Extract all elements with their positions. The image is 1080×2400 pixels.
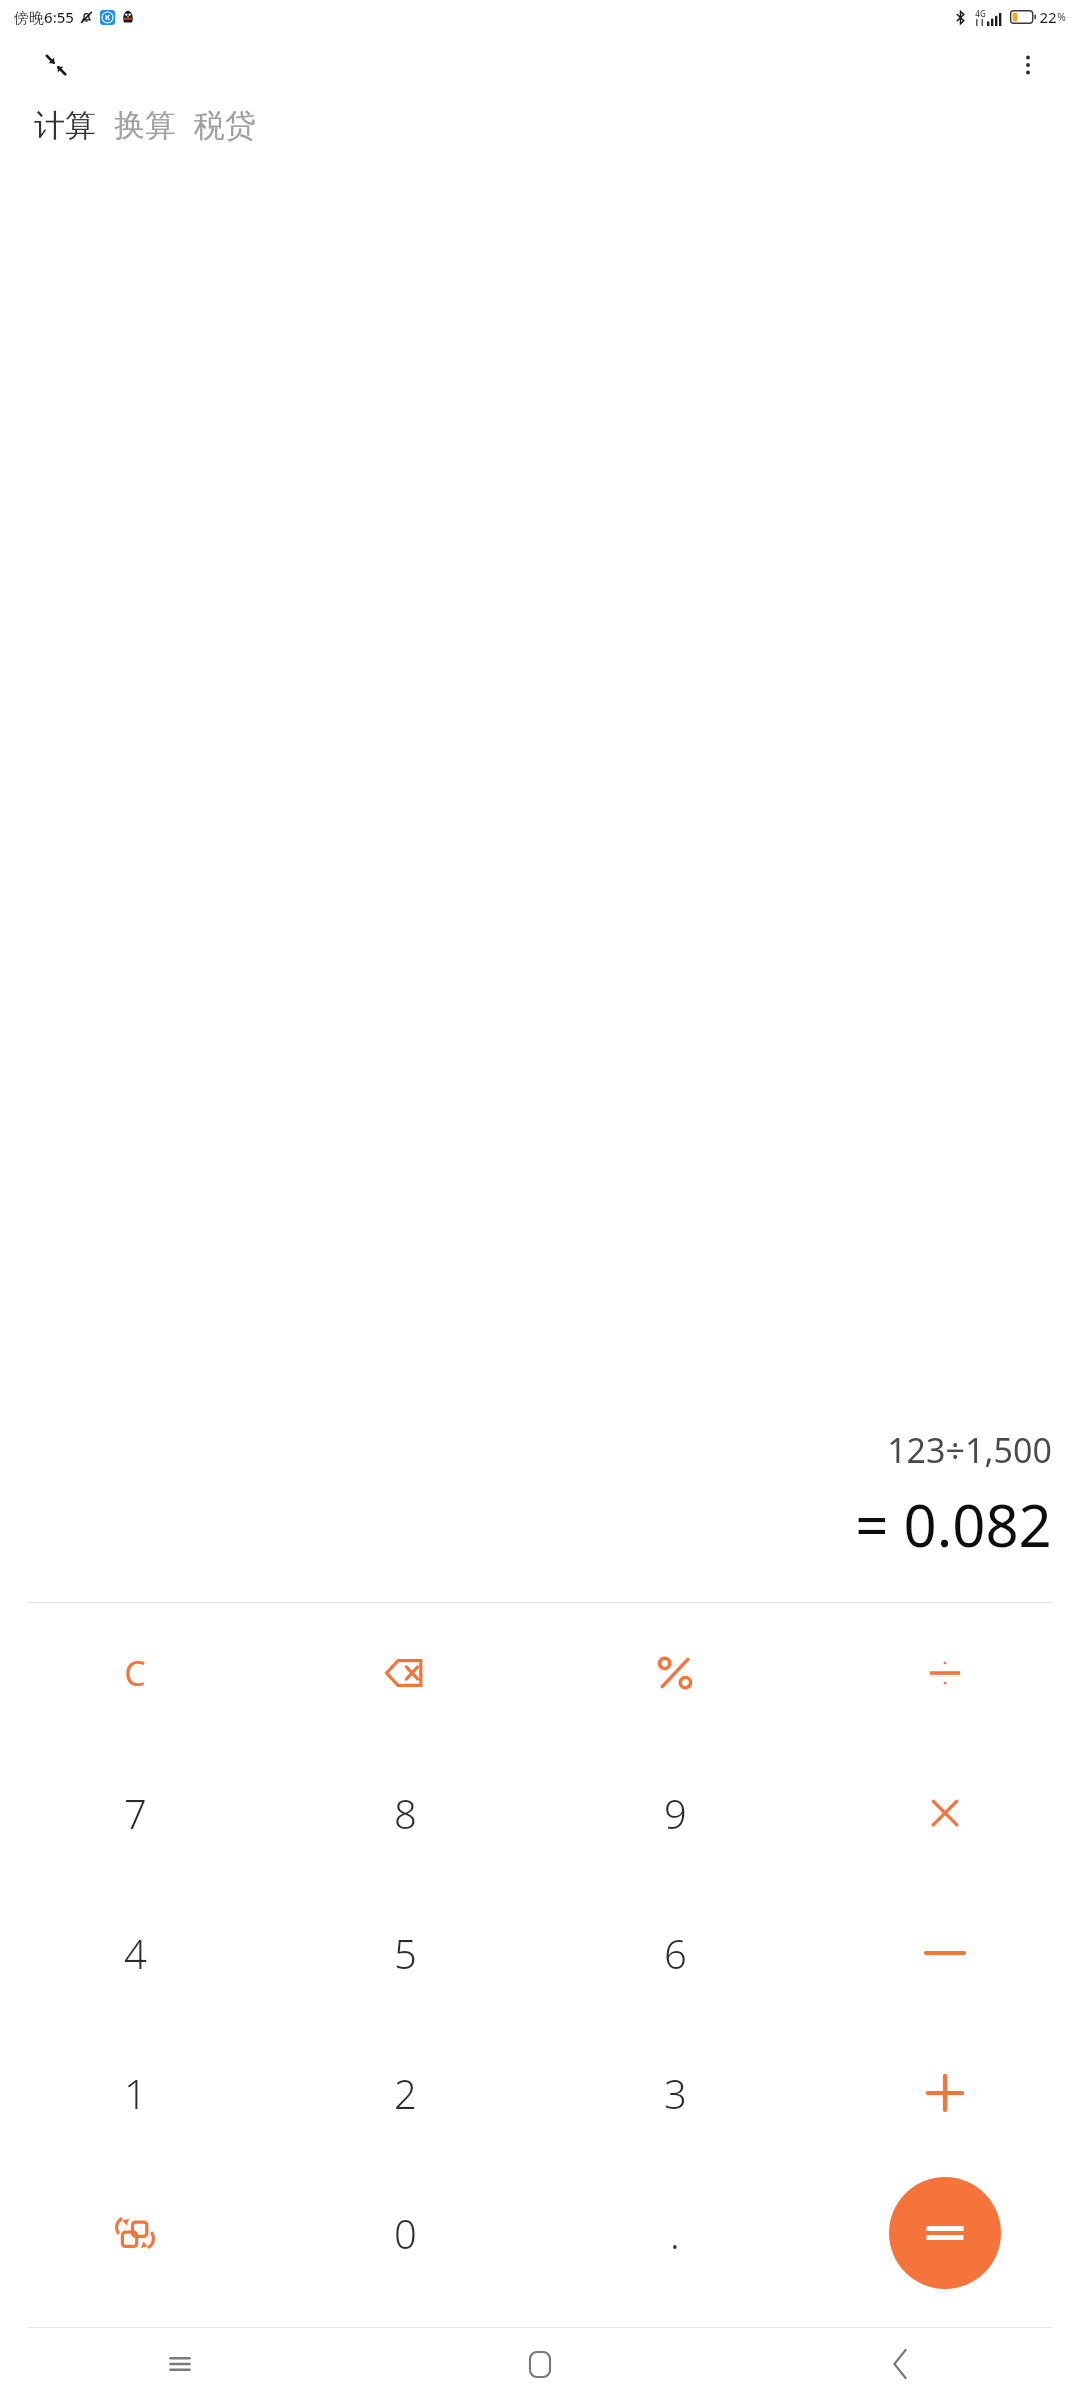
- staticText: 1: [124, 2066, 147, 2120]
- staticText: 0: [394, 2206, 417, 2260]
- button[interactable]: 2: [270, 2023, 540, 2163]
- staticText: .: [670, 2206, 680, 2260]
- button[interactable]: Recents: [0, 2328, 360, 2400]
- staticText: 7: [124, 1786, 147, 1840]
- button[interactable]: C: [0, 1603, 270, 1743]
- staticText: K: [105, 13, 110, 23]
- staticText: 2: [394, 2066, 417, 2120]
- staticText: 傍晚6:55: [14, 7, 74, 27]
- button[interactable]: Equals: [889, 2177, 1001, 2289]
- button[interactable]: 计算: [30, 102, 100, 149]
- staticText: 123÷1,500: [887, 1427, 1052, 1473]
- button[interactable]: [810, 2023, 1080, 2163]
- staticText: 计算: [34, 106, 96, 145]
- staticText: 6: [664, 1926, 687, 1980]
- button[interactable]: [810, 1603, 1080, 1743]
- button[interactable]: 4: [0, 1883, 270, 2023]
- staticText: 22: [1039, 7, 1057, 27]
- staticText: = 0.082: [855, 1485, 1052, 1564]
- button[interactable]: [810, 1743, 1080, 1883]
- staticText: 换算: [114, 106, 176, 145]
- button[interactable]: 换算: [110, 102, 180, 149]
- staticText: 4: [124, 1926, 147, 1980]
- button[interactable]: [810, 1883, 1080, 2023]
- staticText: 8: [394, 1786, 417, 1840]
- button[interactable]: 9: [540, 1743, 810, 1883]
- button[interactable]: .: [540, 2163, 810, 2303]
- staticText: 9: [664, 1786, 687, 1840]
- button[interactable]: 税贷: [190, 102, 260, 149]
- button[interactable]: Back: [720, 2328, 1080, 2400]
- staticText: 3: [664, 2066, 687, 2120]
- button[interactable]: [540, 1603, 810, 1743]
- button[interactable]: Backspace: [270, 1603, 540, 1743]
- staticText: 税贷: [194, 106, 256, 145]
- button[interactable]: Home: [360, 2328, 720, 2400]
- staticText: C: [124, 1650, 146, 1696]
- button[interactable]: 3: [540, 2023, 810, 2163]
- button[interactable]: 8: [270, 1743, 540, 1883]
- button[interactable]: 0: [270, 2163, 540, 2303]
- button[interactable]: Unit converter: [0, 2163, 270, 2303]
- staticText: 4G: [975, 8, 986, 19]
- button[interactable]: 6: [540, 1883, 810, 2023]
- staticText: 5: [394, 1926, 417, 1980]
- button[interactable]: 5: [270, 1883, 540, 2023]
- staticText: %: [1057, 10, 1066, 24]
- button[interactable]: 1: [0, 2023, 270, 2163]
- button[interactable]: 7: [0, 1743, 270, 1883]
- button[interactable]: Collapse: [34, 43, 78, 87]
- button[interactable]: More options: [1004, 41, 1052, 89]
